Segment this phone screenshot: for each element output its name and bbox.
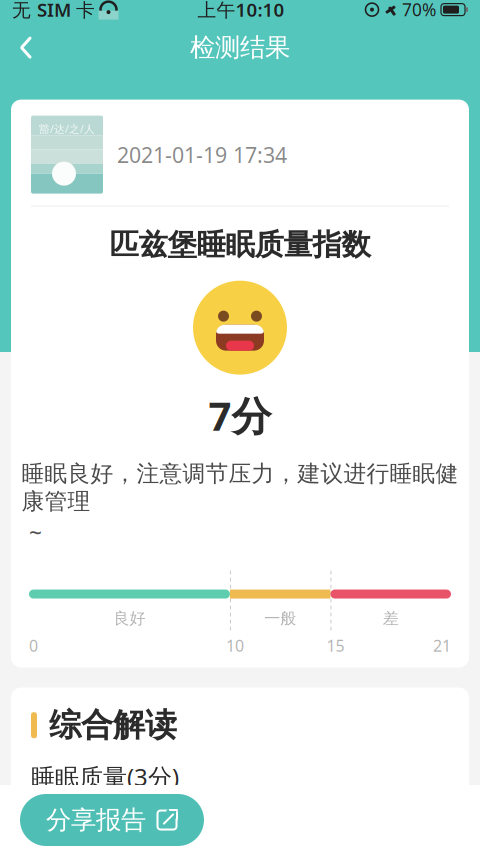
staticText: 豁/达/之/人 bbox=[39, 122, 95, 136]
staticText: 上午10:10 bbox=[197, 0, 284, 22]
staticText: 检测结果 bbox=[190, 32, 290, 63]
button[interactable]: 返回 bbox=[0, 25, 52, 71]
staticText: 一般 bbox=[264, 609, 296, 628]
staticText: 良好 bbox=[113, 609, 145, 628]
staticText: 10 bbox=[226, 635, 244, 656]
staticText: 21 bbox=[433, 635, 451, 656]
staticText: 差 bbox=[383, 609, 399, 628]
button[interactable]: 分享报告 bbox=[20, 794, 204, 846]
staticText: 70% bbox=[402, 0, 436, 21]
staticText: 7分 bbox=[208, 389, 271, 442]
staticText: 15 bbox=[326, 635, 344, 656]
staticText: ~ bbox=[29, 517, 42, 548]
staticText: 无 SIM 卡 bbox=[12, 0, 95, 22]
staticText: 0 bbox=[29, 635, 38, 656]
staticText: 2021-01-19 17:34 bbox=[117, 140, 287, 169]
staticText: 睡眠良好，注意调节压力，建议进行睡眠健康管理 bbox=[21, 460, 458, 515]
staticText: 分享报告 bbox=[46, 804, 146, 835]
staticText: 睡眠质量(3分) bbox=[31, 761, 179, 793]
staticText: 匹兹堡睡眠质量指数 bbox=[109, 227, 370, 263]
staticText: 综合解读 bbox=[49, 706, 177, 745]
